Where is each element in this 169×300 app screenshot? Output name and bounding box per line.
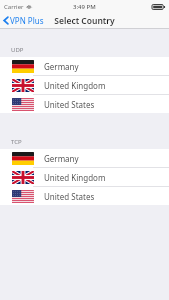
button[interactable]: United Kingdom [0, 76, 169, 94]
staticText: Select Country [54, 15, 115, 27]
button[interactable]: United Kingdom [0, 168, 169, 186]
button[interactable]: Germany [0, 149, 169, 167]
staticText: Carrier [4, 3, 24, 11]
staticText: United States [44, 191, 95, 202]
staticText: Germany [44, 61, 79, 72]
staticText: United Kingdom [44, 172, 106, 183]
staticText: Germany [44, 153, 79, 164]
button[interactable]: United States [0, 95, 169, 113]
button[interactable]: United States [0, 187, 169, 205]
staticText: VPN Plus [10, 15, 44, 26]
staticText: 3:49 PM [73, 3, 96, 11]
button[interactable]: VPN Plus [0, 13, 48, 28]
staticText: UDP [11, 46, 24, 54]
staticText: United States [44, 99, 95, 110]
staticText: TCP [11, 138, 22, 146]
button[interactable]: Germany [0, 57, 169, 75]
staticText: United Kingdom [44, 80, 106, 91]
